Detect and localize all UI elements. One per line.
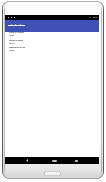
staticText: Data Structure bbox=[8, 24, 25, 27]
button[interactable]: What is a Data bbox=[5, 31, 99, 39]
button[interactable]: Back bbox=[21, 157, 33, 164]
button[interactable]: Home bbox=[48, 157, 60, 164]
button[interactable]: Operation in Da bbox=[5, 46, 99, 54]
staticText: Learn bbox=[9, 49, 15, 52]
staticText: Operation in Da bbox=[9, 46, 26, 49]
staticText: Learn bbox=[9, 42, 15, 45]
staticText: Types of Data bbox=[9, 39, 23, 42]
button[interactable]: Data Structure bbox=[5, 20, 99, 32]
staticText: Operation in Da bbox=[9, 46, 26, 49]
staticText: Types of Data bbox=[9, 39, 23, 42]
button[interactable]: Home button bbox=[44, 171, 61, 176]
staticText: What is a Data bbox=[9, 31, 24, 34]
staticText: Learn bbox=[9, 34, 15, 37]
staticText: Learn bbox=[9, 42, 15, 45]
button[interactable]: Recent apps bbox=[70, 157, 82, 164]
button[interactable]: Types of Data bbox=[5, 39, 99, 47]
staticText: Learn bbox=[9, 49, 15, 52]
staticText: Data Structure bbox=[8, 24, 25, 27]
staticText: Learn bbox=[9, 34, 15, 37]
staticText: What is a Data bbox=[9, 31, 24, 34]
